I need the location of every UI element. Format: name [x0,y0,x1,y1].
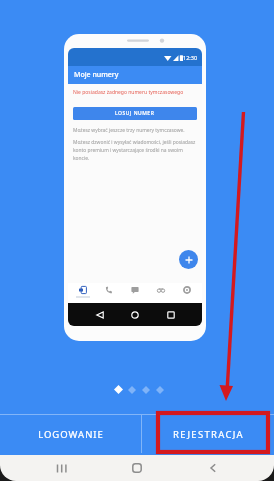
button[interactable]: Calls [98,283,120,303]
button[interactable]: Settings [176,283,198,303]
staticText: Możesz wybrać jeszcze trzy numery tymcza… [73,127,185,134]
button[interactable]: LOSUJ NUMER [73,107,197,120]
staticText: Moje numery [74,70,119,80]
button[interactable]: Voicemail [150,283,172,303]
staticText: LOSUJ NUMER [115,110,155,117]
button[interactable]: REJESTRACJA [142,415,274,453]
button[interactable]: Recent apps [46,455,76,481]
staticText: LOGOWANIE [38,428,104,441]
button[interactable]: Messages [124,283,146,303]
staticText: 12:30 [183,54,198,61]
button[interactable]: Back [198,455,228,481]
button[interactable]: LOGOWANIE [0,415,141,453]
button[interactable]: Add [179,250,198,269]
staticText: Nie posiadasz żadnego numeru tymczasoweg… [73,89,184,96]
button[interactable]: My numbers [72,283,94,303]
staticText: REJESTRACJA [173,428,244,441]
button[interactable]: Home [122,455,152,481]
staticText: Możesz dzwonić i wysyłać wiadomości, jeś… [73,139,197,162]
